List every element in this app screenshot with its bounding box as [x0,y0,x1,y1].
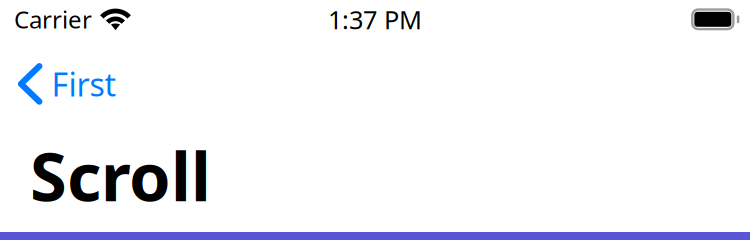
staticText: First [51,63,116,105]
button[interactable]: Back to First [0,62,130,106]
staticText: 1:37 PM [328,3,422,36]
staticText: Carrier [14,3,92,35]
staticText: Scroll [30,131,211,219]
